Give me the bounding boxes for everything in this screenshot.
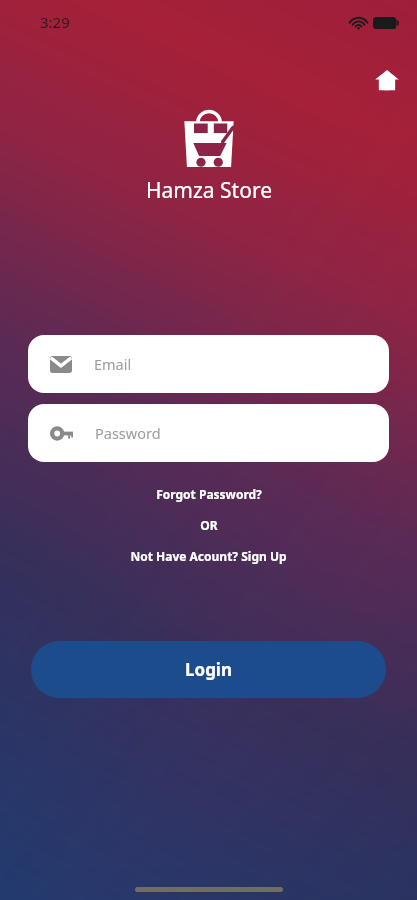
staticText: Login <box>185 658 233 681</box>
staticText: OR <box>200 517 218 533</box>
staticText: Forgot Password? <box>156 486 262 502</box>
button[interactable]: Email <box>28 335 389 393</box>
staticText: Email <box>94 354 132 374</box>
button[interactable]: Login <box>31 641 386 698</box>
staticText: Not Have Acount? Sign Up <box>130 548 287 564</box>
staticText: Password <box>95 423 161 443</box>
staticText: Hamza Store <box>146 176 272 205</box>
button[interactable]: Forgot Password? <box>28 482 389 506</box>
button[interactable]: Not Have Acount? Sign Up <box>28 544 389 568</box>
button[interactable]: Password <box>28 404 389 462</box>
button[interactable]: Home <box>369 62 405 98</box>
staticText: 3:29 <box>40 12 70 32</box>
